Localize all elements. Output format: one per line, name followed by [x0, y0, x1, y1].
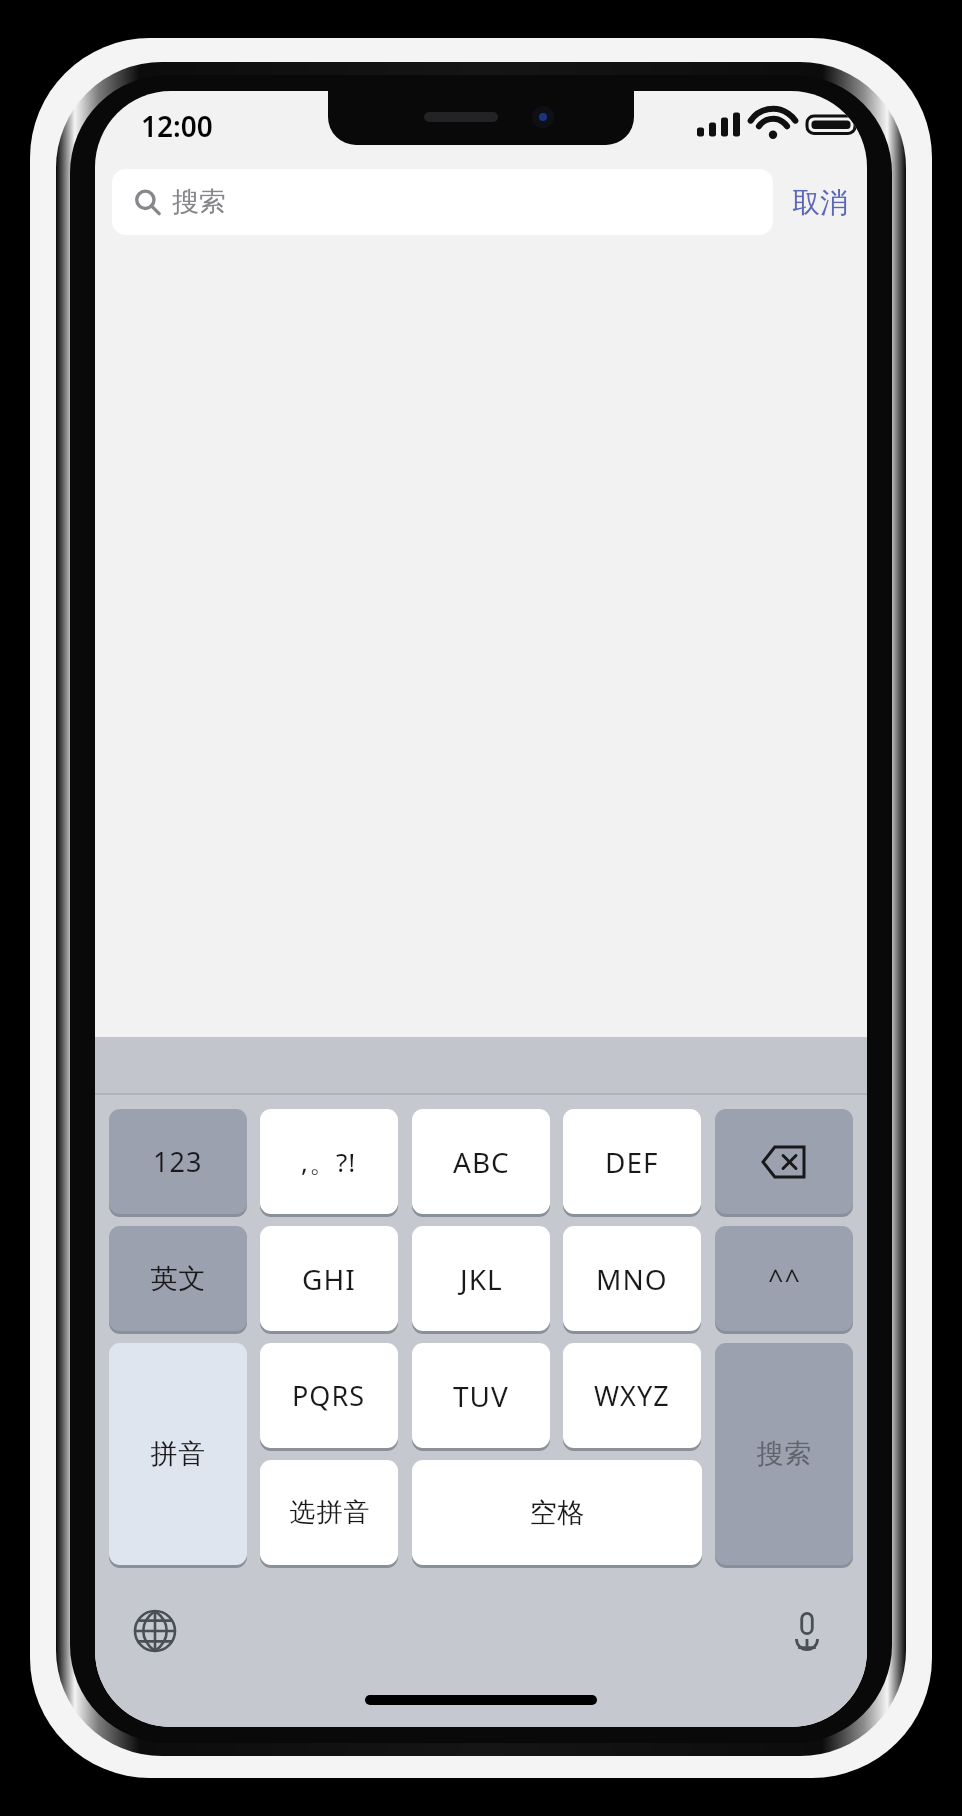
button[interactable]: PQRS: [260, 1343, 398, 1448]
button[interactable]: DEF: [563, 1109, 701, 1214]
button[interactable]: MNO: [563, 1226, 701, 1331]
button[interactable]: TUV: [412, 1343, 550, 1448]
button[interactable]: ^^: [715, 1226, 853, 1331]
button[interactable]: Dictation: [775, 1599, 839, 1663]
staticText: 英文: [150, 1262, 206, 1296]
button[interactable]: WXYZ: [563, 1343, 701, 1448]
staticText: GHI: [302, 1260, 356, 1298]
button[interactable]: 选拼音: [260, 1460, 398, 1565]
staticText: 123: [153, 1143, 203, 1180]
staticText: TUV: [453, 1377, 509, 1415]
staticText: MNO: [596, 1260, 668, 1298]
staticText: 搜索: [172, 185, 226, 219]
staticText: 搜索: [756, 1437, 812, 1471]
staticText: DEF: [605, 1143, 659, 1181]
button[interactable]: JKL: [412, 1226, 550, 1331]
staticText: ,。?!: [301, 1144, 357, 1180]
button[interactable]: 空格: [412, 1460, 702, 1565]
button[interactable]: [715, 1109, 853, 1214]
staticText: PQRS: [292, 1377, 366, 1414]
staticText: ABC: [453, 1143, 510, 1181]
staticText: WXYZ: [594, 1377, 670, 1414]
button[interactable]: GHI: [260, 1226, 398, 1331]
button[interactable]: Switch keyboard: [123, 1599, 187, 1663]
other: Delete: [715, 1109, 853, 1214]
staticText: ^^: [768, 1260, 801, 1297]
staticText: 空格: [529, 1496, 585, 1530]
button[interactable]: 搜索: [715, 1343, 853, 1565]
button[interactable]: 取消: [773, 169, 867, 235]
button[interactable]: ABC: [412, 1109, 550, 1214]
staticText: JKL: [460, 1260, 503, 1298]
staticText: 取消: [792, 185, 848, 220]
button[interactable]: 英文: [109, 1226, 247, 1331]
button[interactable]: 123: [109, 1109, 247, 1214]
button[interactable]: 拼音: [109, 1343, 247, 1565]
staticText: 拼音: [150, 1437, 206, 1471]
button[interactable]: ,。?!: [260, 1109, 398, 1214]
button[interactable]: 搜索: [112, 169, 773, 235]
staticText: 选拼音: [289, 1496, 370, 1529]
staticText: 12:00: [141, 107, 213, 145]
